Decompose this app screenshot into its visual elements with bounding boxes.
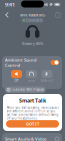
staticText: Customize With Playback — [12, 88, 44, 91]
staticText: Battery 86% — [22, 41, 43, 46]
button[interactable]: Help — [53, 10, 63, 20]
staticText: Off — [14, 79, 18, 82]
staticText: Ambient Sound Control — [5, 57, 37, 68]
button[interactable]: Ambient Sound Control — [50, 60, 59, 65]
staticText: Ambient — [41, 79, 53, 82]
staticText: Smart Audio & Video — [5, 136, 46, 141]
staticText: When you start speaking, music pauses an… — [6, 106, 58, 120]
staticText: Connected — [26, 19, 42, 22]
staticText: Smart Talk — [19, 97, 46, 104]
button[interactable]: Noise — [26, 70, 37, 82]
button[interactable]: GOT IT — [6, 120, 59, 128]
button[interactable]: Ambient — [41, 70, 53, 82]
button[interactable]: Customize With Playback — [5, 86, 46, 93]
staticText: 9:41 — [5, 1, 15, 8]
staticText: Noise — [27, 79, 35, 82]
button[interactable]: Off — [11, 70, 22, 82]
staticText: WH-1000XM5 — [20, 12, 45, 18]
staticText: GOT IT — [26, 121, 39, 126]
button[interactable]: Back — [2, 10, 12, 20]
staticText: ? — [57, 12, 59, 18]
